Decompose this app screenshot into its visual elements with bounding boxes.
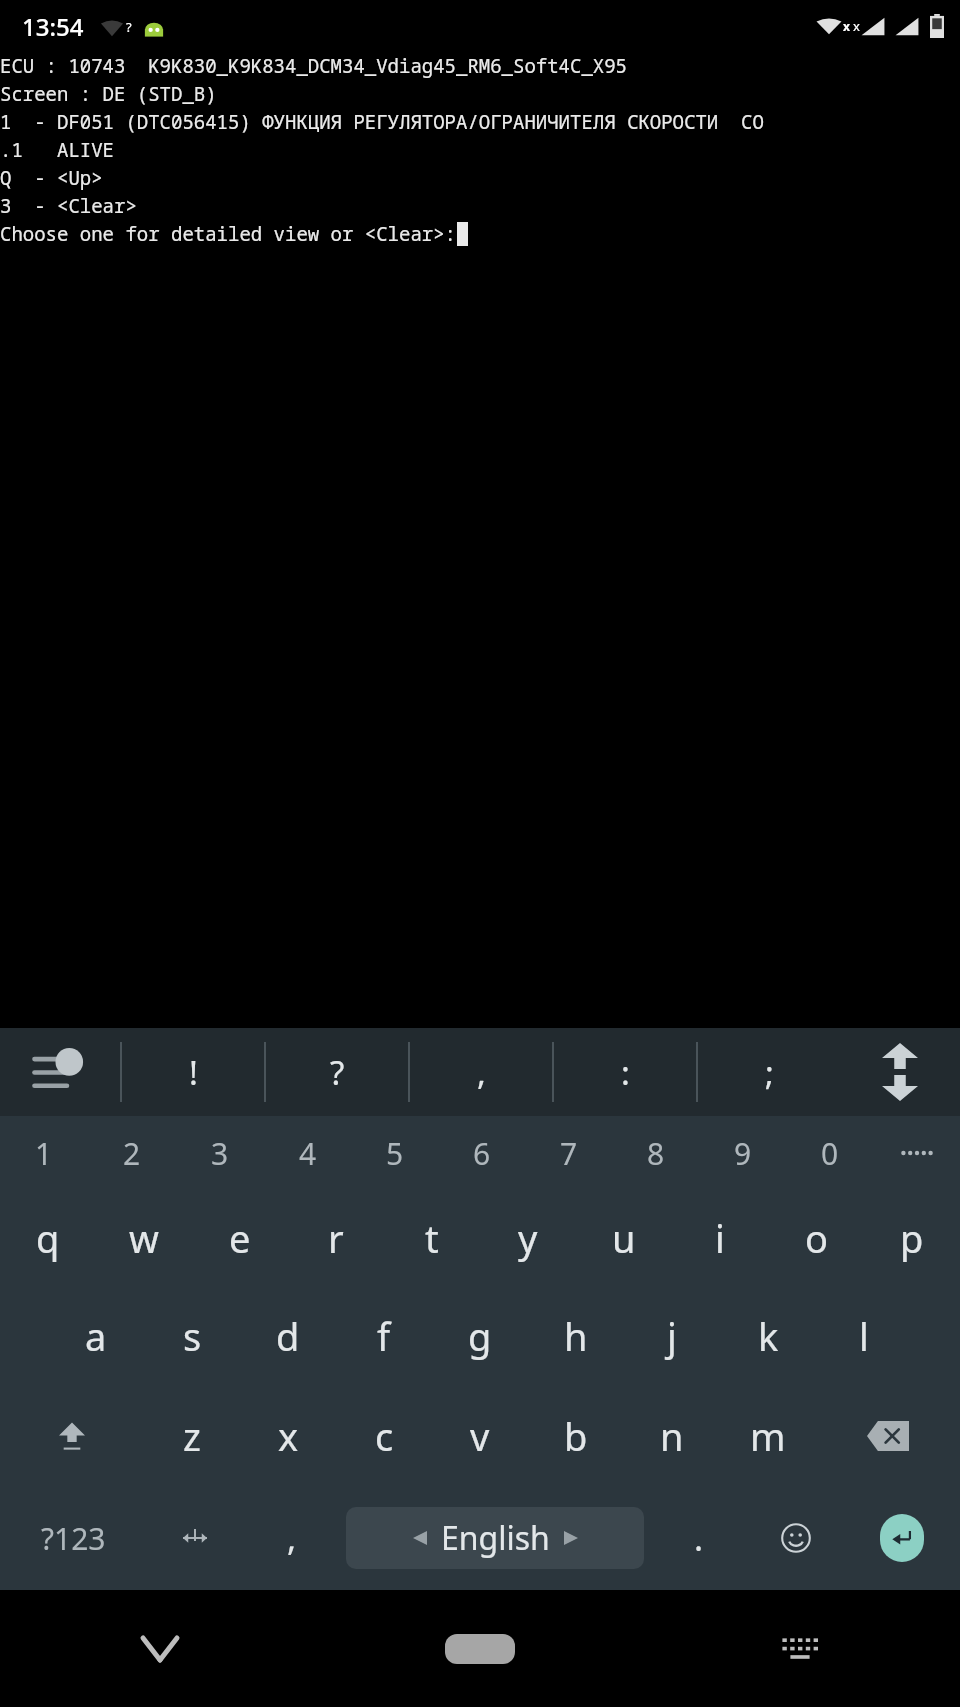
button[interactable]: e — [192, 1190, 288, 1286]
button[interactable]: : — [554, 1028, 696, 1116]
button[interactable]: 2 — [88, 1116, 176, 1190]
button[interactable]: 8 — [612, 1116, 699, 1190]
button[interactable]: o — [768, 1190, 864, 1286]
button[interactable]: Shift — [0, 1386, 144, 1486]
staticText: 2 — [123, 1133, 141, 1174]
staticText: 0 — [821, 1133, 839, 1174]
staticText: Choose one for detailed view or <Clear>: — [0, 221, 457, 247]
staticText: y — [518, 1212, 538, 1264]
staticText: ! — [189, 1050, 198, 1095]
button[interactable]: y — [480, 1190, 576, 1286]
staticText: . — [694, 1515, 704, 1561]
staticText: 1 — [35, 1133, 53, 1174]
staticText: q — [36, 1212, 60, 1264]
staticText: t — [425, 1212, 439, 1264]
staticText: .1 ALIVE — [0, 137, 115, 163]
button[interactable]: k — [720, 1286, 816, 1386]
staticText: f — [377, 1310, 391, 1362]
button[interactable]: l — [816, 1286, 912, 1386]
button[interactable]: ?123 — [0, 1486, 146, 1590]
staticText: a — [85, 1310, 107, 1362]
button[interactable]: , — [243, 1486, 340, 1590]
staticText: c — [375, 1410, 394, 1462]
staticText: k — [758, 1310, 779, 1362]
staticText: ? — [126, 18, 132, 36]
button[interactable]: Text options — [0, 1028, 120, 1116]
button[interactable]: v — [432, 1386, 528, 1486]
button[interactable]: n — [624, 1386, 720, 1486]
staticText: ECU : 10743 K9K830_K9K834_DCM34_Vdiag45_… — [0, 53, 628, 79]
button[interactable]: q — [0, 1190, 96, 1286]
button[interactable]: 5 — [351, 1116, 438, 1190]
staticText: 7 — [560, 1133, 578, 1174]
button[interactable]: 7 — [525, 1116, 612, 1190]
button[interactable]: i — [672, 1190, 768, 1286]
button[interactable]: . — [650, 1486, 747, 1590]
button[interactable]: j — [624, 1286, 720, 1386]
button[interactable]: d — [240, 1286, 336, 1386]
button[interactable]: p — [864, 1190, 960, 1286]
button[interactable]: b — [528, 1386, 624, 1486]
staticText: Screen : DE (STD_B) — [0, 81, 217, 107]
button[interactable]: , — [410, 1028, 552, 1116]
staticText: r — [328, 1212, 344, 1264]
staticText: s — [183, 1310, 202, 1362]
button[interactable]: Emoji — [747, 1486, 844, 1590]
staticText: 13:54 — [22, 10, 84, 43]
staticText: Q - <Up> — [0, 165, 103, 191]
staticText: g — [468, 1310, 492, 1362]
staticText: j — [667, 1310, 677, 1362]
button[interactable]: Scroll — [840, 1028, 960, 1116]
staticText: ?123 — [41, 1518, 106, 1559]
button[interactable]: 0 — [786, 1116, 873, 1190]
button[interactable]: 4 — [264, 1116, 351, 1190]
staticText: z — [183, 1410, 201, 1462]
button[interactable]: r — [288, 1190, 384, 1286]
staticText: x — [853, 17, 860, 35]
staticText: 6 — [473, 1133, 491, 1174]
button[interactable]: h — [528, 1286, 624, 1386]
button[interactable]: ? — [266, 1028, 408, 1116]
staticText: l — [859, 1310, 869, 1362]
staticText: x — [278, 1410, 299, 1462]
button[interactable]: 9 — [699, 1116, 786, 1190]
button[interactable]: m — [720, 1386, 816, 1486]
button[interactable]: Backspace — [816, 1386, 960, 1486]
button[interactable]: u — [576, 1190, 672, 1286]
staticText: , — [287, 1515, 297, 1561]
button[interactable]: w — [96, 1190, 192, 1286]
staticText: ? — [330, 1050, 345, 1095]
button[interactable]: Move cursor — [146, 1486, 243, 1590]
staticText: h — [564, 1310, 588, 1362]
button[interactable]: ! — [122, 1028, 264, 1116]
button[interactable]: s — [144, 1286, 240, 1386]
button[interactable]: a — [48, 1286, 144, 1386]
staticText: 1 - DF051 (DTC056415) ФУНКЦИЯ РЕГУЛЯТОРА… — [0, 109, 764, 135]
staticText: x — [843, 18, 850, 34]
button[interactable]: f — [336, 1286, 432, 1386]
button[interactable]: c — [336, 1386, 432, 1486]
staticText: i — [715, 1212, 725, 1264]
staticText: 9 — [734, 1133, 752, 1174]
staticText: d — [276, 1310, 300, 1362]
button[interactable]: Switch keyboard — [640, 1590, 960, 1707]
button[interactable]: Home — [320, 1590, 640, 1707]
button[interactable]: ; — [698, 1028, 840, 1116]
staticText: ; — [765, 1050, 774, 1095]
staticText: 8 — [647, 1133, 665, 1174]
button[interactable]: x — [240, 1386, 336, 1486]
button[interactable]: 6 — [438, 1116, 525, 1190]
staticText: o — [805, 1212, 828, 1264]
button[interactable]: Hide keyboard — [0, 1590, 320, 1707]
button[interactable]: g — [432, 1286, 528, 1386]
staticText: v — [470, 1410, 490, 1462]
button[interactable]: z — [144, 1386, 240, 1486]
button[interactable]: More — [873, 1116, 960, 1190]
staticText: 3 - <Clear> — [0, 193, 137, 219]
button[interactable]: Enter — [844, 1486, 960, 1590]
button[interactable]: 3 — [176, 1116, 264, 1190]
staticText: 4 — [299, 1133, 317, 1174]
button[interactable]: English — [346, 1507, 644, 1569]
button[interactable]: 1 — [0, 1116, 88, 1190]
button[interactable]: t — [384, 1190, 480, 1286]
